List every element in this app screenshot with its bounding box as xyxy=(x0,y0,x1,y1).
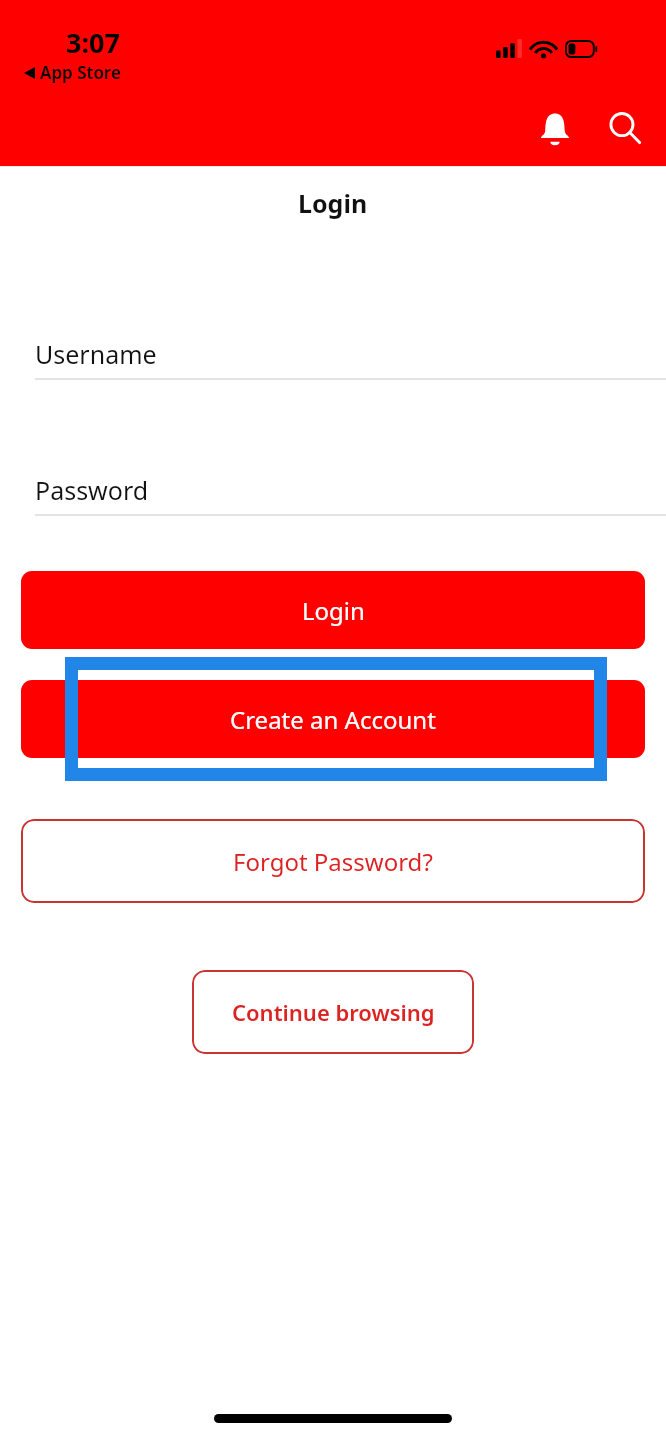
staticText: Forgot Password? xyxy=(233,845,433,878)
staticText: Login xyxy=(302,594,365,627)
staticText: Create an Account xyxy=(230,703,436,736)
button[interactable]: Password xyxy=(35,463,631,516)
staticText: 3:07 xyxy=(66,24,120,61)
staticText: Username xyxy=(35,337,157,371)
button[interactable]: Continue browsing xyxy=(192,970,474,1054)
staticText: Login xyxy=(298,186,368,220)
button[interactable]: Login xyxy=(21,571,645,649)
staticText: Continue browsing xyxy=(232,997,435,1027)
staticText: Password xyxy=(35,473,149,507)
button[interactable]: Create an Account xyxy=(21,680,645,758)
staticText: App Store xyxy=(40,61,121,84)
button[interactable]: Username xyxy=(35,327,631,380)
button[interactable]: Forgot Password? xyxy=(21,819,645,903)
button[interactable]: Notifications xyxy=(528,101,582,155)
button[interactable]: App Store xyxy=(22,59,123,86)
button[interactable]: Search xyxy=(598,101,652,155)
